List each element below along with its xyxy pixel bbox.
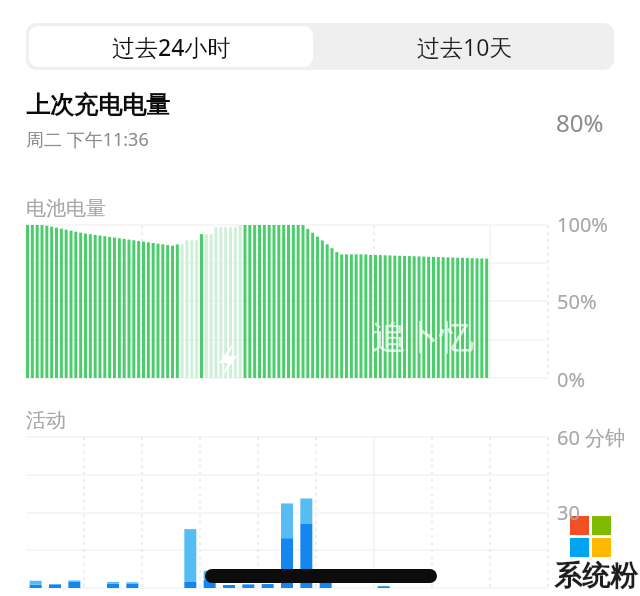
- staticText: 100%: [557, 211, 608, 238]
- button[interactable]: 过去10天: [318, 26, 611, 67]
- staticText: 60 分钟: [557, 424, 626, 451]
- staticText: 周二 下午11:36: [26, 127, 149, 152]
- staticText: 0%: [557, 366, 586, 393]
- staticText: 30: [557, 499, 580, 526]
- staticText: 50%: [557, 288, 597, 315]
- staticText: 电池电量: [26, 196, 106, 221]
- button[interactable]: 过去24小时: [29, 26, 313, 67]
- staticText: 80%: [556, 106, 604, 139]
- staticText: 上次充电电量: [26, 90, 170, 120]
- staticText: 追卜忆: [372, 316, 474, 359]
- staticText: 系统粉: [554, 558, 638, 593]
- staticText: 活动: [26, 408, 66, 433]
- staticText: 过去24小时: [112, 31, 231, 62]
- staticText: 过去10天: [417, 31, 513, 62]
